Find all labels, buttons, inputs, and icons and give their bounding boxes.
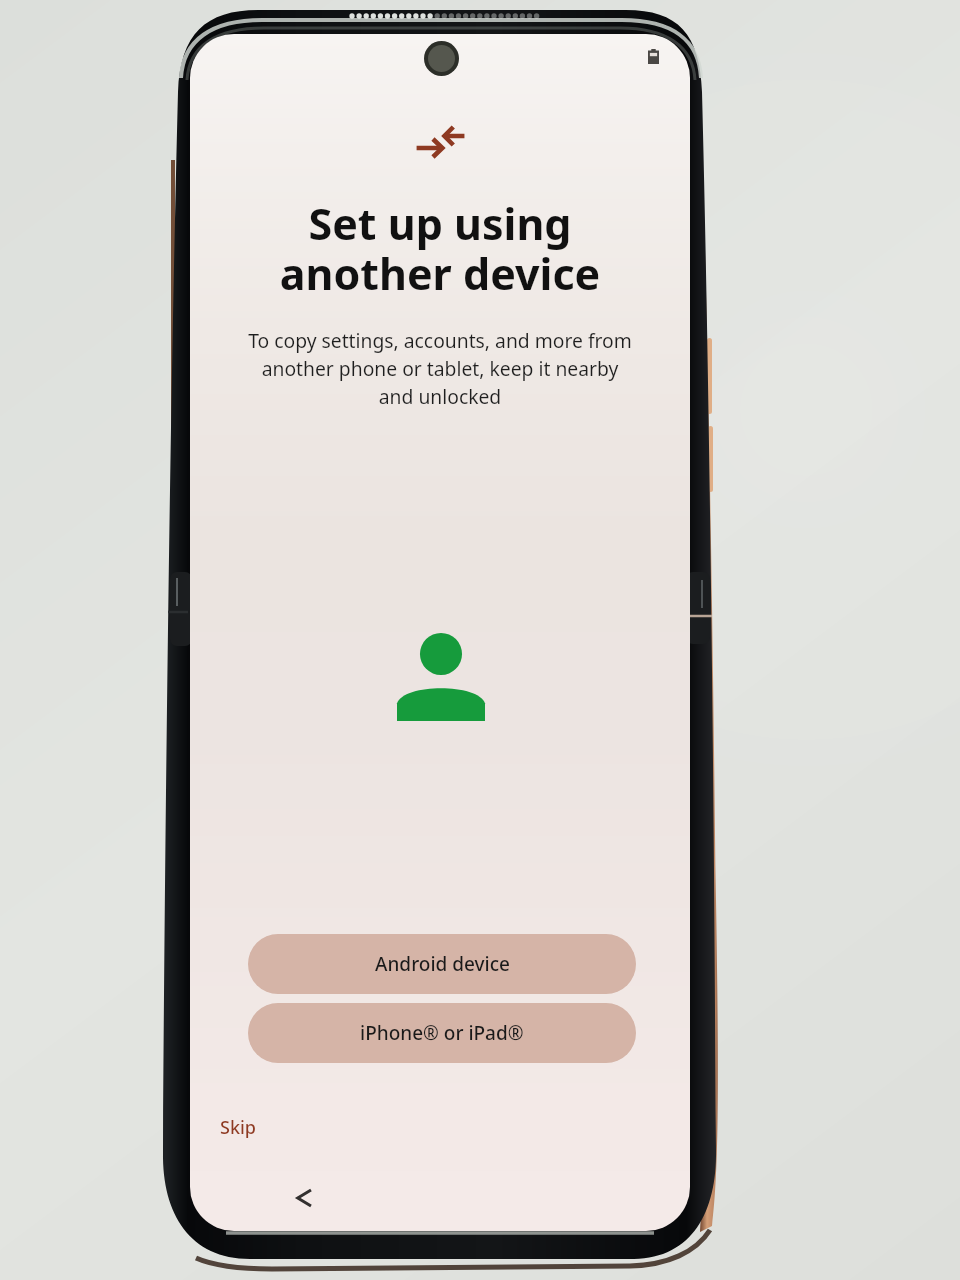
button[interactable]: Back (291, 1185, 317, 1211)
staticText: iPhone® or iPad® (360, 1020, 524, 1046)
button[interactable]: Android device (248, 934, 636, 994)
staticText: Android device (375, 951, 510, 977)
button[interactable]: iPhone® or iPad® (248, 1003, 636, 1063)
staticText: Skip (220, 1115, 256, 1140)
button[interactable]: Skip (220, 1115, 256, 1140)
staticText: To copy settings, accounts, and more fro… (190, 327, 690, 410)
staticText: Set up using another device (190, 194, 690, 303)
